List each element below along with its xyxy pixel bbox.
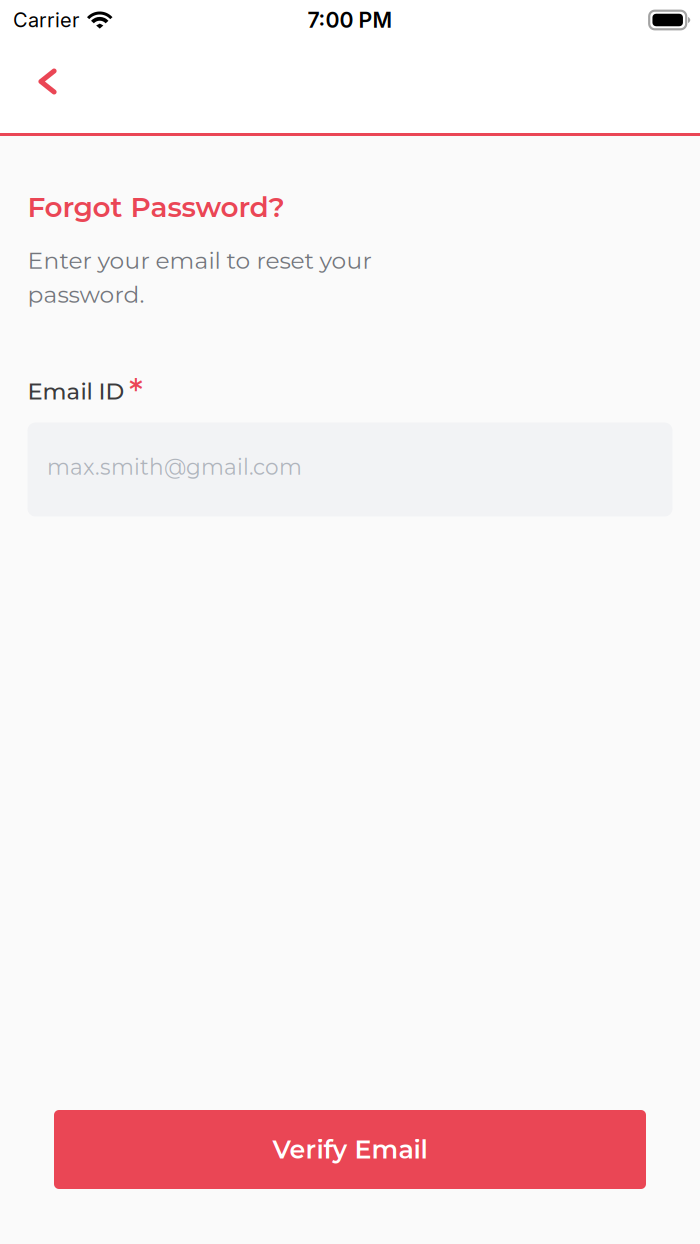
staticText: Enter your email to reset your password. bbox=[27, 246, 371, 308]
staticText: Carrier bbox=[13, 8, 79, 32]
button[interactable]: Verify Email bbox=[54, 1110, 646, 1189]
staticText: 7:00 PM bbox=[307, 7, 392, 33]
staticText: max.smith@gmail.com bbox=[47, 454, 302, 480]
staticText: Verify Email bbox=[272, 1134, 427, 1165]
staticText: Email ID bbox=[27, 377, 124, 405]
button[interactable]: Back bbox=[19, 58, 75, 114]
staticText: Forgot Password? bbox=[27, 190, 284, 224]
staticText: * bbox=[129, 370, 143, 413]
